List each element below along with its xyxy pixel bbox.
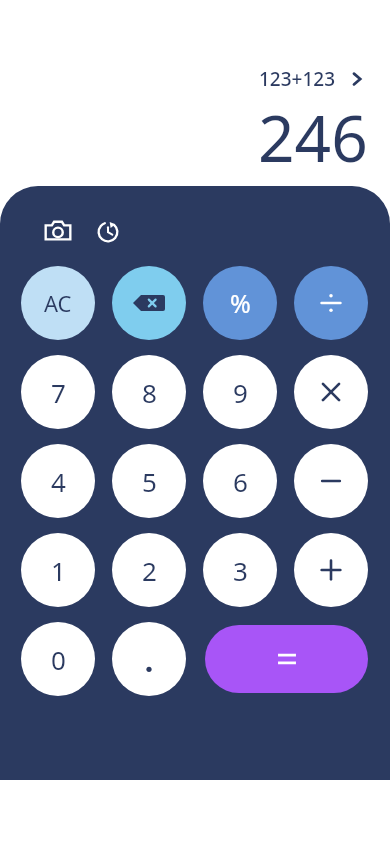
button[interactable]: Show full expression [346,68,368,90]
button[interactable]: 2 [112,533,186,607]
staticText: AC [44,288,72,318]
button[interactable]: AC [21,266,95,340]
button[interactable]: 3 [203,533,277,607]
staticText: 2 [142,553,157,588]
staticText: 1 [51,553,66,588]
button[interactable]: Scan with camera [40,213,76,249]
staticText: 5 [142,464,157,499]
button[interactable]: Decimal point [112,622,186,696]
staticText: 3 [233,553,248,588]
button[interactable]: 8 [112,355,186,429]
staticText: 9 [233,375,248,410]
staticText: 4 [51,464,66,499]
button[interactable]: 0 [21,622,95,696]
staticText: 7 [51,375,66,410]
button[interactable]: % [203,266,277,340]
button[interactable]: Plus [294,533,368,607]
staticText: % [230,286,251,320]
staticText: 246 [258,94,368,181]
button[interactable]: 6 [203,444,277,518]
button[interactable]: 9 [203,355,277,429]
staticText: 6 [233,464,248,499]
button[interactable]: Backspace [112,266,186,340]
button[interactable]: History [90,213,126,249]
button[interactable]: Minus [294,444,368,518]
button[interactable]: 7 [21,355,95,429]
staticText: 123+123 [259,66,336,92]
staticText: 0 [51,642,66,677]
button[interactable]: 1 [21,533,95,607]
button[interactable]: Multiply [294,355,368,429]
button[interactable]: Equals [205,625,368,693]
button[interactable]: 4 [21,444,95,518]
button[interactable]: Divide [294,266,368,340]
staticText: 8 [142,375,157,410]
button[interactable]: 5 [112,444,186,518]
